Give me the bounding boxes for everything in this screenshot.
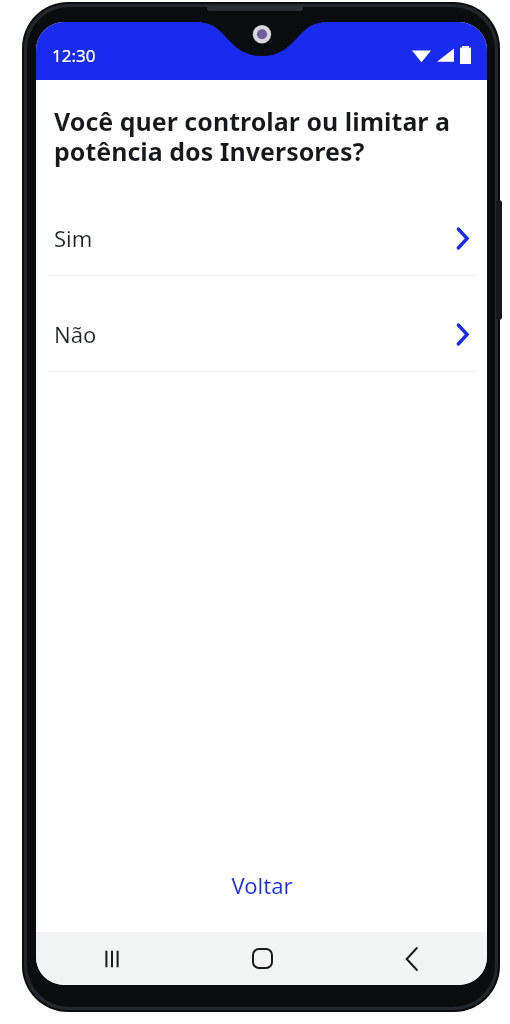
staticText: Você quer controlar ou limitar a potênci… — [54, 104, 457, 169]
staticText: 12:30 — [52, 44, 96, 67]
staticText: Sim — [54, 223, 93, 253]
button[interactable]: Home — [187, 932, 337, 985]
staticText: Não — [54, 319, 97, 349]
button[interactable]: Voltar — [36, 856, 487, 914]
button[interactable]: Recent apps — [36, 932, 187, 985]
button[interactable]: Back — [337, 932, 487, 985]
staticText: Voltar — [231, 870, 293, 900]
button[interactable]: Não — [36, 297, 487, 393]
button[interactable]: Sim — [36, 201, 487, 297]
